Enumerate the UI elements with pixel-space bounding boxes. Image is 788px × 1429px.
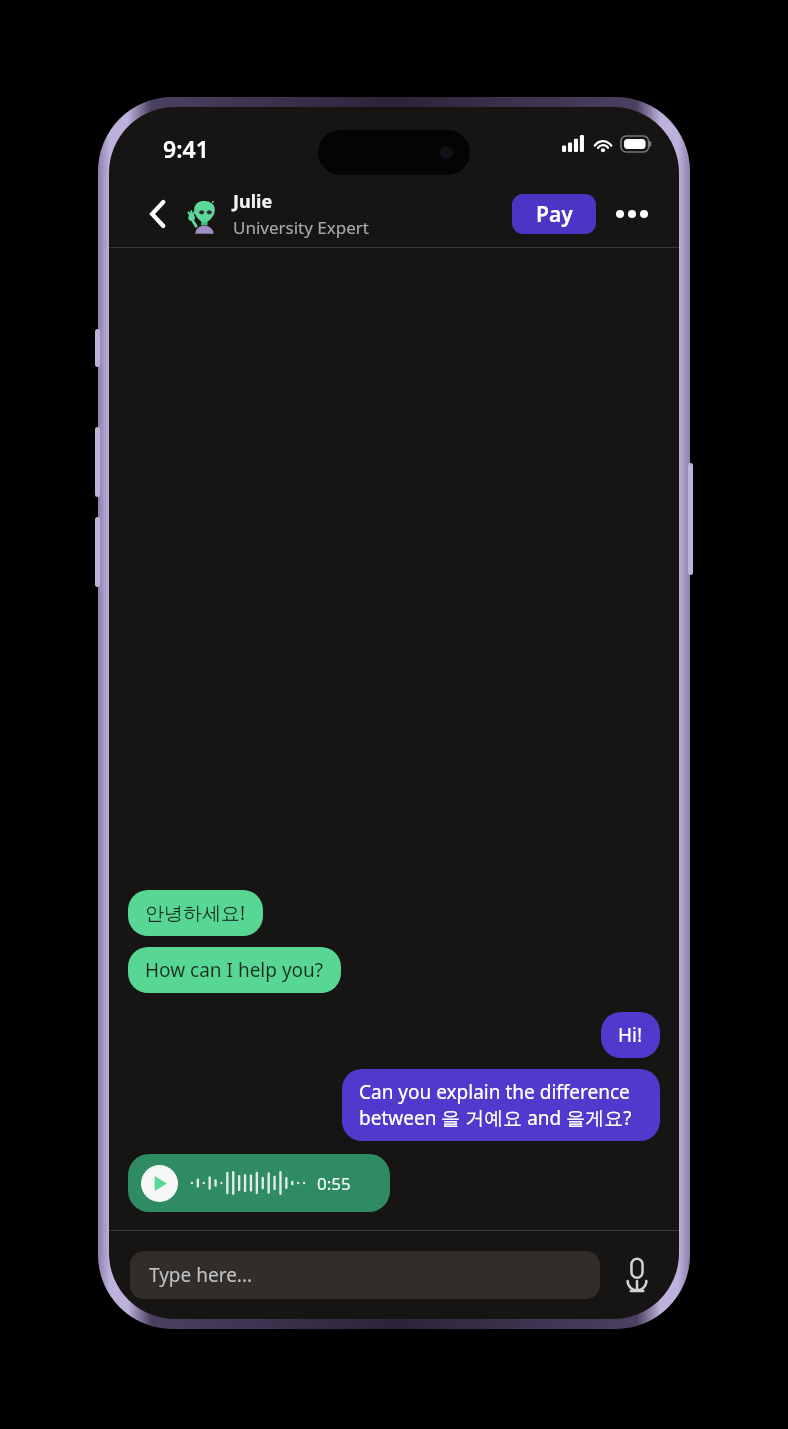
staticText: 0:55 bbox=[317, 1172, 351, 1195]
button[interactable]: More options bbox=[612, 195, 652, 233]
button[interactable]: Hi! bbox=[601, 1012, 660, 1058]
button[interactable]: 안녕하세요! bbox=[128, 890, 263, 936]
button[interactable]: Type here... bbox=[130, 1251, 600, 1299]
staticText: University Expert bbox=[233, 216, 369, 239]
staticText: How can I help you? bbox=[145, 957, 324, 983]
staticText: Hi! bbox=[618, 1022, 643, 1048]
button[interactable]: Can you explain the difference between 을… bbox=[342, 1069, 660, 1141]
button[interactable]: Julie bbox=[233, 189, 369, 239]
button[interactable]: Back bbox=[141, 197, 175, 231]
staticText: Type here... bbox=[149, 1262, 253, 1288]
button[interactable]: Record voice message bbox=[616, 1251, 658, 1299]
staticText: Pay bbox=[536, 200, 573, 229]
staticText: 9:41 bbox=[163, 133, 209, 164]
button[interactable]: How can I help you? bbox=[128, 947, 341, 993]
staticText: Can you explain the difference between 을… bbox=[359, 1079, 643, 1131]
staticText: Julie bbox=[233, 189, 273, 214]
button[interactable]: Pay bbox=[512, 194, 596, 234]
staticText: 안녕하세요! bbox=[145, 900, 246, 926]
button[interactable]: Play voice message bbox=[128, 1154, 390, 1212]
